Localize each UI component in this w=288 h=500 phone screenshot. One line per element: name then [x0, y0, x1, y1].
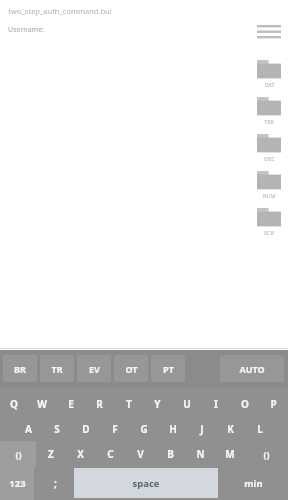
button[interactable]: M: [215, 441, 245, 466]
staticText: NUM: [262, 192, 276, 199]
staticText: V: [137, 447, 144, 461]
staticText: R: [96, 397, 103, 411]
staticText: two_step_auth_command.bui: [8, 6, 112, 16]
staticText: L: [257, 422, 263, 436]
button[interactable]: space: [74, 468, 218, 498]
button[interactable]: U: [172, 391, 201, 416]
staticText: space: [132, 477, 160, 490]
button[interactable]: L: [245, 416, 274, 441]
staticText: X: [77, 447, 84, 461]
staticText: P: [270, 397, 277, 411]
staticText: (): [15, 448, 22, 460]
staticText: Q: [10, 397, 18, 411]
staticText: Z: [48, 447, 54, 461]
staticText: ;: [54, 476, 57, 490]
staticText: (): [263, 448, 270, 460]
button[interactable]: E: [56, 391, 85, 416]
button[interactable]: P: [259, 391, 288, 416]
staticText: DAT: [264, 81, 275, 88]
staticText: T: [126, 397, 132, 411]
staticText: H: [169, 422, 177, 436]
button[interactable]: OT: [114, 355, 148, 382]
staticText: TR: [51, 363, 63, 375]
staticText: E: [68, 397, 74, 411]
button[interactable]: R: [85, 391, 114, 416]
staticText: 123: [9, 477, 26, 490]
button[interactable]: min: [218, 466, 288, 500]
button[interactable]: (): [0, 441, 36, 466]
staticText: F: [112, 422, 118, 436]
button[interactable]: J: [187, 416, 216, 441]
button[interactable]: TR: [40, 355, 74, 382]
button[interactable]: Q: [0, 391, 28, 416]
button[interactable]: PT: [151, 355, 185, 382]
button[interactable]: Folder DAT: [253, 60, 285, 88]
button[interactable]: Folder DEC: [253, 134, 285, 162]
staticText: min: [244, 477, 263, 490]
staticText: Username:: [8, 25, 44, 35]
staticText: G: [140, 422, 148, 436]
staticText: A: [25, 422, 32, 436]
staticText: K: [227, 422, 234, 436]
button[interactable]: D: [71, 416, 100, 441]
staticText: W: [37, 397, 47, 411]
button[interactable]: (): [245, 441, 288, 466]
staticText: AUTO: [239, 363, 265, 375]
button[interactable]: K: [216, 416, 245, 441]
staticText: B: [167, 447, 174, 461]
button[interactable]: N: [185, 441, 215, 466]
staticText: TER: [264, 118, 274, 125]
button[interactable]: X: [65, 441, 95, 466]
button[interactable]: H: [158, 416, 187, 441]
staticText: D: [82, 422, 90, 436]
button[interactable]: BR: [3, 355, 37, 382]
staticText: J: [200, 422, 204, 436]
button[interactable]: T: [114, 391, 143, 416]
button[interactable]: ;: [36, 466, 74, 500]
button[interactable]: V: [125, 441, 155, 466]
staticText: O: [241, 397, 249, 411]
button[interactable]: B: [155, 441, 185, 466]
button[interactable]: Folder SCR: [253, 208, 285, 236]
staticText: C: [107, 447, 114, 461]
staticText: S: [54, 422, 60, 436]
button[interactable]: W: [28, 391, 56, 416]
staticText: SCR: [264, 229, 274, 236]
staticText: BR: [14, 363, 26, 375]
button[interactable]: I: [201, 391, 230, 416]
button[interactable]: G: [129, 416, 158, 441]
button[interactable]: F: [100, 416, 129, 441]
button[interactable]: Y: [143, 391, 172, 416]
button[interactable]: A: [14, 416, 42, 441]
button[interactable]: Folder TER: [253, 97, 285, 125]
button[interactable]: EV: [77, 355, 111, 382]
button[interactable]: Z: [36, 441, 65, 466]
staticText: PT: [163, 363, 174, 375]
staticText: U: [183, 397, 191, 411]
button[interactable]: Menu: [255, 21, 283, 41]
button[interactable]: O: [230, 391, 259, 416]
staticText: M: [225, 447, 235, 461]
staticText: Y: [154, 397, 161, 411]
staticText: EV: [89, 363, 100, 375]
staticText: DEC: [264, 155, 275, 162]
button[interactable]: C: [95, 441, 125, 466]
button[interactable]: Folder NUM: [253, 171, 285, 199]
staticText: OT: [125, 363, 138, 375]
button[interactable]: S: [42, 416, 71, 441]
staticText: I: [214, 397, 218, 411]
staticText: N: [196, 447, 205, 461]
button[interactable]: AUTO: [220, 355, 284, 382]
button[interactable]: 123: [0, 466, 34, 500]
